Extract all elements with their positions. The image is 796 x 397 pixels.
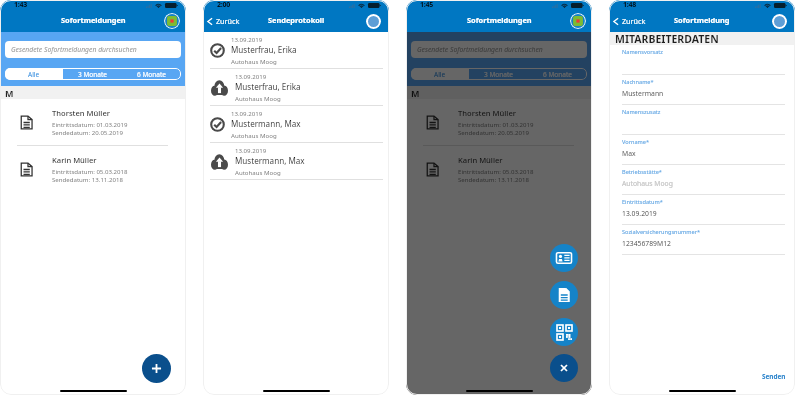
staticText: 1:48 (623, 0, 637, 10)
staticText: 13.09.2019 (622, 209, 657, 218)
button[interactable]: Alle (411, 68, 469, 80)
button[interactable]: Mitarbeiter (550, 244, 578, 272)
staticText: 123456789M12 (622, 239, 671, 248)
button[interactable]: Alle (5, 68, 63, 80)
staticText: Alle (28, 70, 40, 79)
staticText: Musterfrau, Erika (231, 44, 297, 55)
staticText: M (411, 87, 420, 99)
staticText: Sendeprotokoll (268, 15, 325, 25)
button[interactable]: Dokument (550, 281, 578, 309)
staticText: Zurück (622, 16, 646, 26)
button[interactable]: Profil (164, 13, 180, 29)
staticText: Eintrittsdatum: 01.03.2019 (52, 120, 128, 128)
button[interactable]: 3 Monate (63, 68, 122, 80)
staticText: Sofortmeldungen (467, 15, 532, 25)
staticText: Thorsten Müller (52, 108, 110, 118)
button[interactable]: Gesendete Sofortmeldungen durchsuchen (411, 41, 587, 58)
button[interactable]: Zurück (613, 16, 646, 26)
staticText: Eintrittsdatum: 01.03.2019 (458, 120, 534, 128)
staticText: Autohaus Moog (235, 94, 281, 102)
staticText: Mustermann, Max (235, 155, 305, 166)
staticText: Mustermann, Max (231, 118, 301, 129)
staticText: Eintrittsdatum: 05.03.2018 (52, 167, 128, 175)
staticText: M (5, 87, 14, 99)
staticText: 13.09.2019 (231, 109, 263, 117)
staticText: Sozialversicherungsnummer* (622, 228, 701, 236)
staticText: 6 Monate (137, 70, 166, 79)
staticText: Musterfrau, Erika (235, 81, 301, 92)
staticText: Gesendete Sofortmeldungen durchsuchen (11, 45, 137, 54)
staticText: Karin Müller (458, 155, 503, 165)
staticText: 13.09.2019 (235, 146, 267, 154)
staticText: 1:43 (14, 0, 28, 10)
button[interactable]: Schließen (550, 354, 578, 382)
staticText: Eintrittsdatum: 05.03.2018 (458, 167, 534, 175)
button[interactable]: 6 Monate (122, 68, 181, 80)
staticText: Sendedatum: 20.05.2019 (458, 128, 529, 136)
button[interactable]: Senden (762, 372, 786, 381)
button[interactable]: Profil (366, 14, 381, 29)
staticText: Autohaus Moog (622, 179, 673, 188)
staticText: 13.09.2019 (235, 72, 267, 80)
staticText: Mustermann (622, 89, 664, 98)
button[interactable]: Vorname* (622, 135, 785, 165)
staticText: Sendedatum: 20.05.2019 (52, 128, 123, 136)
staticText: Zurück (216, 16, 240, 26)
staticText: MITARBEITERDATEN (615, 32, 719, 45)
button[interactable]: 13.09.2019 (203, 32, 389, 68)
button[interactable]: Namensvorsatz (622, 45, 785, 75)
button[interactable]: Nachname* (622, 75, 785, 105)
staticText: Betriebsstätte* (622, 168, 662, 176)
staticText: 13.09.2019 (231, 35, 263, 43)
button[interactable]: Thorsten Müller (0, 99, 186, 145)
staticText: Eintrittsdatum* (622, 198, 663, 206)
button[interactable]: QR-Code scannen (550, 318, 578, 346)
button[interactable]: Zurück (207, 16, 240, 26)
staticText: 3 Monate (78, 70, 107, 79)
button[interactable]: Sozialversicherungsnummer* (622, 225, 785, 255)
button[interactable]: Eintrittsdatum* (622, 195, 785, 225)
button[interactable]: 6 Monate (528, 68, 587, 80)
staticText: Autohaus Moog (235, 168, 281, 176)
staticText: 2:00 (217, 0, 231, 10)
button[interactable]: Namenszusatz (622, 105, 785, 135)
button[interactable]: 13.09.2019 (203, 106, 389, 142)
button[interactable]: Karin Müller (0, 146, 186, 192)
staticText: 3 Monate (484, 70, 513, 79)
button[interactable]: Gesendete Sofortmeldungen durchsuchen (5, 41, 181, 58)
staticText: Sofortmeldung (674, 15, 730, 25)
staticText: Sofortmeldungen (61, 15, 126, 25)
staticText: Nachname* (622, 78, 654, 86)
button[interactable]: 3 Monate (469, 68, 528, 80)
staticText: Gesendete Sofortmeldungen durchsuchen (417, 45, 543, 54)
staticText: Sendedatum: 13.11.2018 (458, 175, 529, 183)
staticText: Namenszusatz (622, 108, 661, 116)
staticText: 1:45 (420, 0, 434, 10)
staticText: Thorsten Müller (458, 108, 516, 118)
staticText: 6 Monate (543, 70, 572, 79)
staticText: Karin Müller (52, 155, 97, 165)
button[interactable]: 13.09.2019 (203, 69, 389, 105)
staticText: Sendedatum: 13.11.2018 (52, 175, 123, 183)
button[interactable]: Karin Müller (406, 146, 592, 192)
button[interactable]: Profil (570, 13, 586, 29)
button[interactable]: Hinzufügen (142, 354, 171, 383)
staticText: Autohaus Moog (231, 131, 277, 139)
staticText: Namensvorsatz (622, 48, 663, 56)
staticText: Max (622, 149, 636, 158)
staticText: Vorname* (622, 138, 650, 146)
button[interactable]: Thorsten Müller (406, 99, 592, 145)
button[interactable]: Profil (772, 14, 787, 29)
staticText: Autohaus Moog (231, 57, 277, 65)
button[interactable]: Betriebsstätte* (622, 165, 785, 195)
staticText: Alle (434, 70, 446, 79)
button[interactable]: 13.09.2019 (203, 143, 389, 179)
